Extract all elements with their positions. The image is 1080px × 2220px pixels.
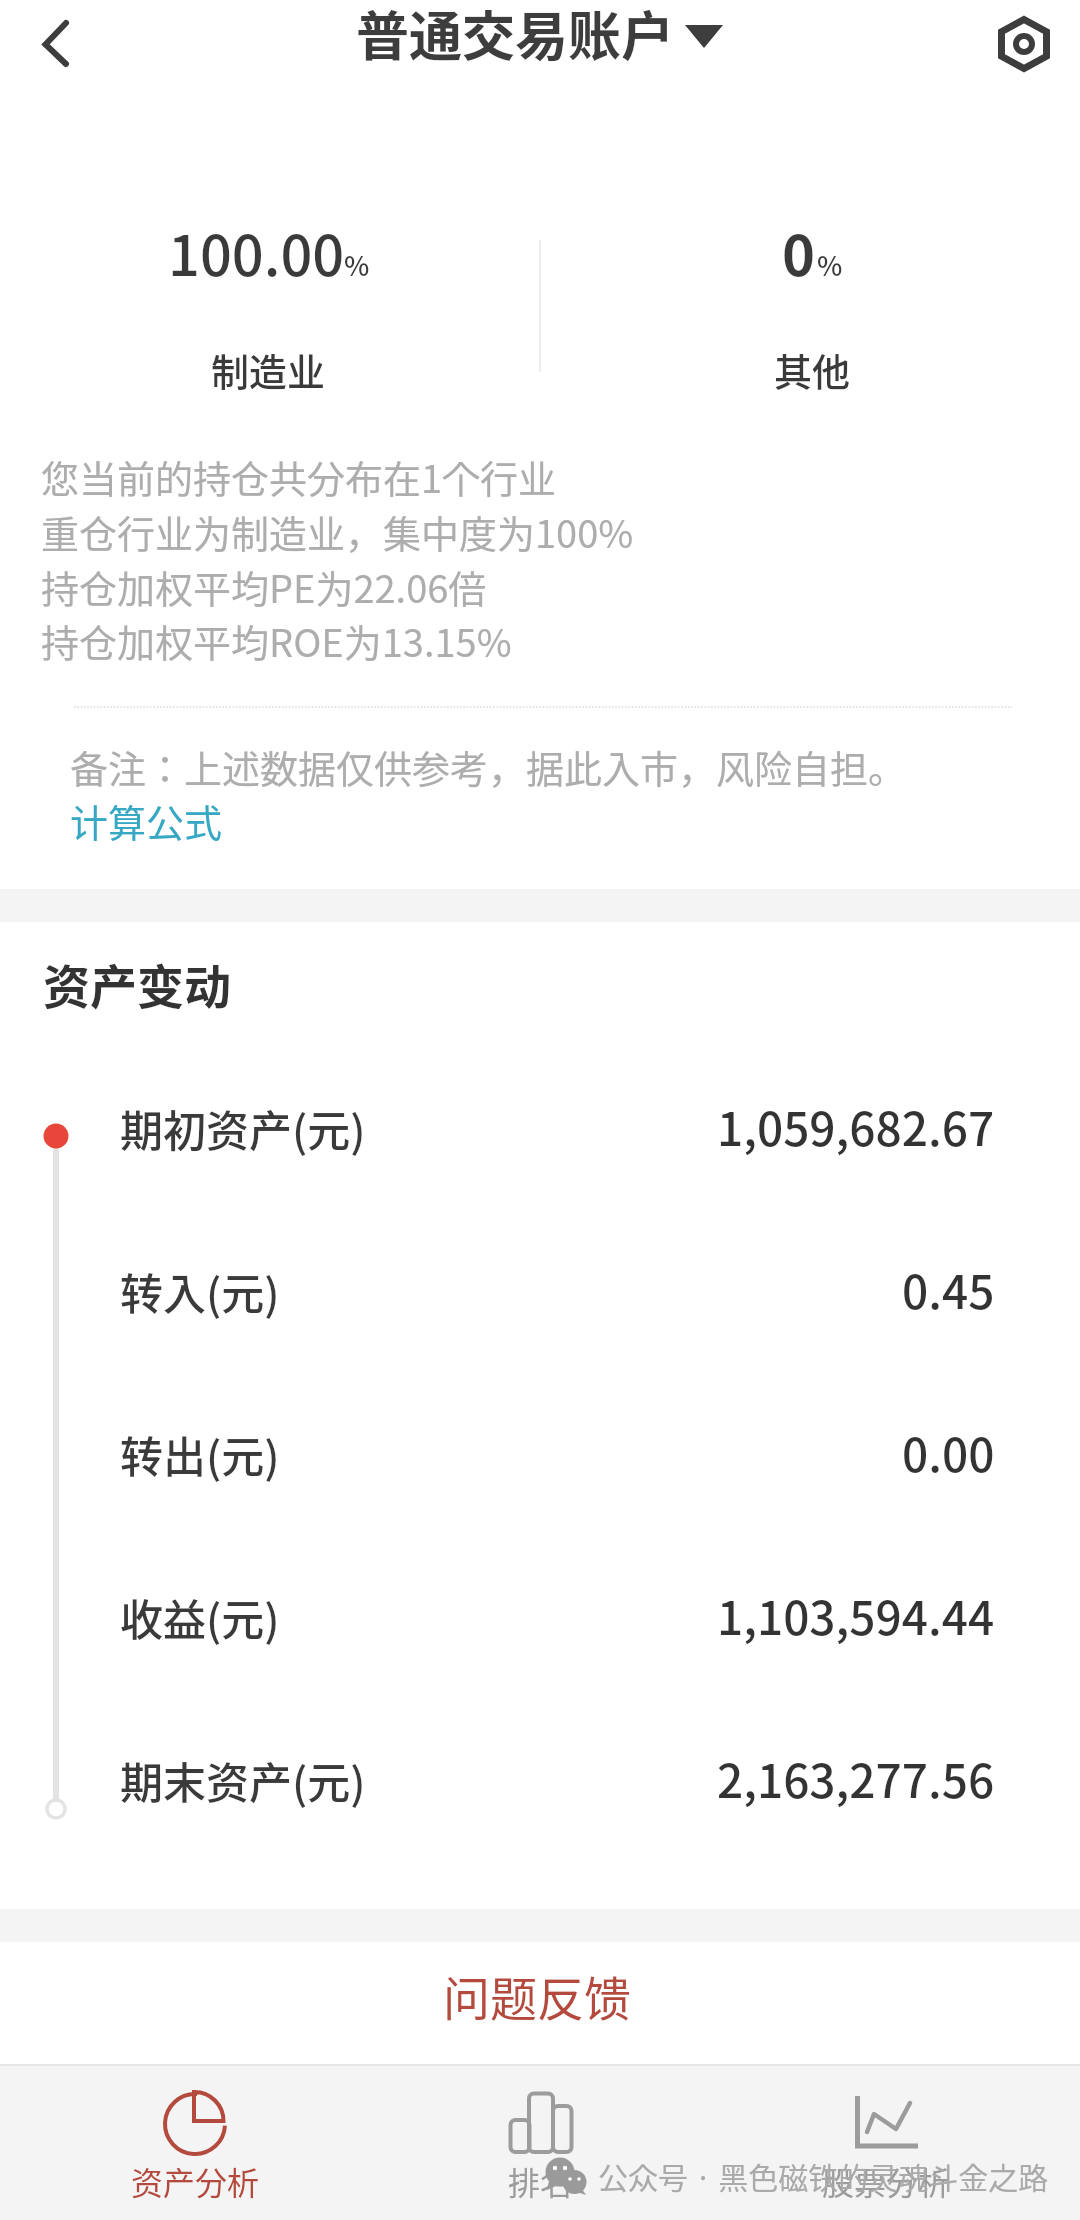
staticText: 重仓行业为制造业，集中度为100%: [41, 504, 634, 559]
staticText: 备注：上述数据仅供参考，据此入市，风险自担。: [70, 739, 907, 794]
button[interactable]: 问题反馈: [0, 1942, 1080, 2064]
button[interactable]: 100.00: [0, 0, 540, 400]
staticText: 股票分析: [822, 2158, 951, 2204]
staticText: 期初资产(元): [120, 1097, 366, 1159]
staticText: 计算公式: [70, 793, 223, 847]
staticText: 0.45: [902, 1256, 995, 1323]
button[interactable]: 转出(元): [0, 1398, 1080, 1518]
button[interactable]: 资产分析: [23, 2066, 368, 2220]
button[interactable]: Back: [16, 4, 96, 84]
staticText: %: [344, 245, 370, 284]
staticText: 其他: [774, 342, 851, 397]
staticText: 您当前的持仓共分布在1个行业: [41, 449, 557, 504]
button[interactable]: 期末资产(元): [0, 1724, 1080, 1844]
staticText: 0: [782, 211, 816, 292]
staticText: 收益(元): [120, 1586, 280, 1648]
staticText: 转入(元): [120, 1260, 280, 1322]
button[interactable]: 期初资产(元): [0, 1072, 1080, 1192]
staticText: 普通交易账户: [356, 0, 674, 71]
staticText: 公众号 · 黑色磁铁的灵魂斗金之路: [598, 2154, 1049, 2197]
staticText: 持仓加权平均ROE为13.15%: [41, 613, 512, 668]
staticText: 0.00: [902, 1419, 995, 1486]
button[interactable]: 收益(元): [0, 1561, 1080, 1681]
staticText: 资产分析: [131, 2158, 260, 2204]
staticText: %: [817, 245, 843, 284]
button[interactable]: 转入(元): [0, 1235, 1080, 1355]
staticText: 排名: [508, 2158, 573, 2204]
staticText: 制造业: [211, 342, 326, 397]
staticText: 资产变动: [43, 949, 231, 1017]
button[interactable]: 股票分析: [714, 2066, 1059, 2220]
staticText: 转出(元): [120, 1423, 280, 1485]
button[interactable]: 0: [540, 0, 1080, 400]
staticText: 2,163,277.56: [717, 1745, 995, 1812]
button[interactable]: 排名: [368, 2066, 713, 2220]
staticText: 100.00: [168, 211, 345, 292]
button[interactable]: Settings: [984, 4, 1064, 84]
staticText: 1,059,682.67: [717, 1093, 995, 1160]
button[interactable]: 普通交易账户: [340, 0, 740, 76]
staticText: 问题反馈: [443, 1961, 631, 2029]
staticText: 持仓加权平均PE为22.06倍: [41, 559, 487, 614]
button[interactable]: 计算公式: [60, 793, 250, 847]
staticText: 1,103,594.44: [717, 1582, 995, 1649]
staticText: 期末资产(元): [120, 1749, 366, 1811]
